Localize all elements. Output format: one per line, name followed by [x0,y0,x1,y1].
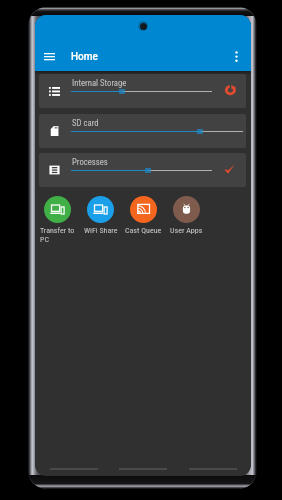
button[interactable]: Open navigation drawer [39,46,60,67]
staticText: Home [71,51,98,63]
button[interactable]: More options [226,46,247,67]
button[interactable]: Home [112,457,174,476]
button[interactable]: Back [43,457,105,476]
button[interactable]: Recent apps [182,457,244,476]
button[interactable]: User Apps [165,196,208,235]
staticText: WiFi Share [84,226,118,235]
button[interactable]: Processes [39,153,246,187]
button[interactable]: Internal Storage [39,74,246,108]
staticText: SD card [72,118,99,128]
button[interactable]: SD card [39,114,246,148]
staticText: Processes [72,157,108,167]
staticText: User Apps [170,226,203,235]
staticText: Cast Queue [125,226,162,235]
button[interactable]: Cast Queue [122,196,165,235]
staticText: Internal Storage [72,78,127,88]
staticText: Transfer to PC [40,226,75,244]
button[interactable]: Transfer to PC [36,196,79,244]
button[interactable]: WiFi Share [79,196,122,235]
